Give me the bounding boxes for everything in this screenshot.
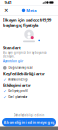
staticText: Meta (26, 8, 36, 13)
staticText: ✓ (3, 89, 6, 93)
staticText: Doğrulanmış rozet (8, 66, 33, 69)
staticText: ✕ (4, 7, 8, 13)
staticText: Standart (3, 45, 21, 50)
staticText: ✓ (3, 95, 6, 99)
staticText: Gelişmiş profil (8, 89, 28, 93)
staticText: Arama önceliği (8, 78, 28, 81)
staticText: Özel çıkartmalar (8, 95, 27, 99)
button[interactable]: Ayrıntıları gör (3, 59, 23, 63)
staticText: İlk ayın için sadece ₺19,99 başlangıç fi… (3, 17, 51, 28)
staticText: 9:41 (4, 0, 11, 5)
staticText: Daha fazla bilgi edinin (13, 113, 44, 117)
staticText: ✓ (3, 77, 6, 82)
button[interactable]: Close (2, 7, 9, 14)
staticText: Bu ayın girişinizi bir ay boyunca deneyi… (3, 51, 46, 58)
staticText: Aboneliğini edinmeye geç (3, 120, 54, 125)
staticText: Keşfedilebilirliği artır (3, 71, 45, 76)
button[interactable]: Aboneliğini edinmeye geç (2, 118, 56, 126)
staticText: Etkileşimi artır (3, 83, 31, 88)
staticText: Ayrıntıları gör (3, 59, 23, 63)
